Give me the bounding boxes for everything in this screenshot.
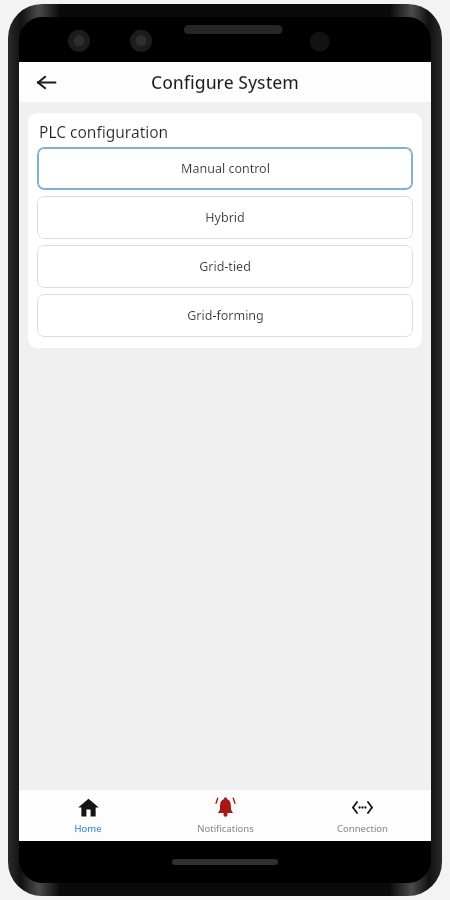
button[interactable]: Back <box>29 65 63 99</box>
staticText: Hybrid <box>205 209 245 226</box>
staticText: Connection <box>337 822 388 835</box>
staticText: PLC configuration <box>39 121 169 142</box>
staticText: Grid-tied <box>199 258 251 275</box>
staticText: Configure System <box>151 70 299 94</box>
button[interactable]: Grid-forming <box>37 294 413 337</box>
staticText: Notifications <box>197 822 254 835</box>
button[interactable]: Grid-tied <box>37 245 413 288</box>
button[interactable]: Home <box>19 790 157 841</box>
staticText: Manual control <box>181 160 270 177</box>
staticText: Grid-forming <box>187 307 264 324</box>
button[interactable]: Manual control <box>37 147 413 190</box>
button[interactable]: Notifications <box>157 790 294 841</box>
button[interactable]: Connection <box>294 790 431 841</box>
button[interactable]: Hybrid <box>37 196 413 239</box>
staticText: Home <box>74 822 102 835</box>
